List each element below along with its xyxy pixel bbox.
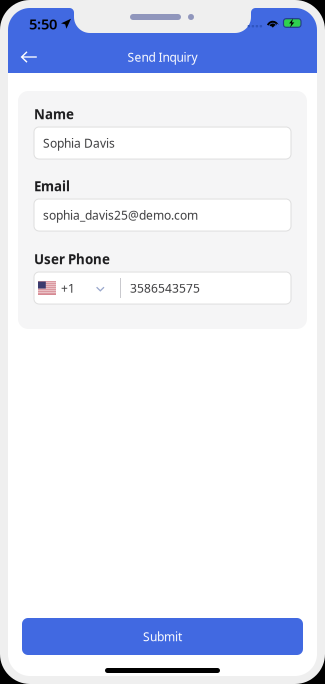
staticText: Name (34, 105, 74, 123)
staticText: Submit (143, 628, 182, 644)
button[interactable]: sophia_davis25@demo.com (34, 199, 291, 231)
button[interactable]: Back (8, 41, 50, 73)
button[interactable]: +1 (34, 272, 291, 304)
button[interactable]: Sophia Davis (34, 127, 291, 159)
button[interactable]: Submit (22, 618, 303, 655)
staticText: +1 (61, 280, 75, 296)
staticText: 5:50 (29, 14, 57, 33)
staticText: 3586543575 (130, 280, 200, 296)
staticText: User Phone (34, 250, 110, 268)
staticText: Sophia Davis (43, 135, 115, 151)
staticText: Send Inquiry (127, 49, 197, 65)
staticText: sophia_davis25@demo.com (43, 207, 198, 223)
staticText: Email (34, 177, 70, 195)
